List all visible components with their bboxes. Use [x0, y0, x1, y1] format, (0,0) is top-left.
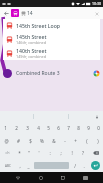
button[interactable]: Backspace [88, 147, 103, 159]
staticText: 145th Street Loop [16, 22, 61, 29]
staticText: " [28, 150, 30, 156]
button[interactable]: & [48, 134, 59, 147]
button[interactable]: Combined Route 3 [0, 66, 103, 80]
staticText: 2 [15, 125, 18, 131]
button[interactable]: 4 [33, 122, 43, 134]
button[interactable]: . [79, 159, 88, 172]
staticText: ) [97, 138, 99, 144]
button[interactable]: / [70, 159, 79, 172]
button[interactable]: 3 [22, 122, 33, 134]
button[interactable]: 1 [0, 122, 11, 134]
staticText: 6 [57, 125, 60, 131]
staticText: 10:30 [92, 1, 101, 6]
staticText: 9 [87, 125, 90, 131]
button[interactable]: Open in Maps [93, 70, 100, 77]
staticText: ; [60, 150, 62, 156]
button[interactable]: Home [35, 172, 46, 183]
staticText: 146th; combined [16, 40, 47, 45]
staticText: 8 [77, 125, 80, 131]
button[interactable]: =\< [0, 147, 14, 159]
staticText: 1 [4, 125, 7, 131]
button[interactable]: 145th Street [3, 32, 100, 46]
staticText: 140th Street [16, 47, 47, 54]
staticText: % [40, 138, 44, 144]
staticText: _ [27, 163, 30, 169]
button[interactable]: + [70, 134, 81, 147]
button[interactable]: " [24, 147, 34, 159]
button[interactable] [69, 111, 103, 122]
button[interactable]: # [12, 134, 24, 147]
staticText: ' [38, 150, 40, 156]
button[interactable]: ' [34, 147, 44, 159]
button[interactable]: : [44, 147, 55, 159]
button[interactable]: Route icon [11, 9, 19, 17]
staticText: / [74, 163, 76, 169]
button[interactable]: 6 [53, 122, 63, 134]
staticText: Combined Route 3 [16, 70, 60, 77]
staticText: ( [86, 138, 88, 144]
staticText: 7 [67, 125, 70, 131]
staticText: 149th; combined [16, 54, 47, 59]
staticText: # [17, 138, 20, 144]
staticText: + [74, 138, 77, 144]
staticText: , [19, 163, 21, 169]
staticText: =\< [5, 151, 10, 155]
button[interactable]: % [36, 134, 48, 147]
staticText: 145th Street [16, 33, 47, 40]
staticText: - [64, 138, 66, 144]
button[interactable]: 5 [43, 122, 53, 134]
button[interactable]: Back [12, 172, 23, 183]
staticText: @ [4, 138, 9, 144]
button[interactable]: 2 [11, 122, 22, 134]
button[interactable]: ) [92, 134, 103, 147]
button[interactable]: 0 [93, 122, 103, 134]
button[interactable]: ; [55, 147, 66, 159]
button[interactable]: - [59, 134, 70, 147]
button[interactable]: , [15, 159, 24, 172]
staticText: $ [29, 138, 32, 144]
button[interactable]: Recents [57, 172, 68, 183]
button[interactable]: ( [81, 134, 92, 147]
staticText: 3 [26, 125, 29, 131]
staticText: 4 [37, 125, 40, 131]
staticText: & [52, 138, 56, 144]
button[interactable]: 7 [63, 122, 73, 134]
button[interactable]: _ [24, 159, 33, 172]
staticText: . [83, 163, 85, 169]
staticText: * [18, 150, 21, 156]
staticText: 5 [47, 125, 50, 131]
button[interactable]: 9 [83, 122, 93, 134]
button[interactable]: ABC [0, 159, 15, 172]
button[interactable]: Keyboard [80, 172, 91, 183]
button[interactable]: ! [66, 147, 77, 159]
button[interactable]: @ [0, 134, 12, 147]
button[interactable]: 145th Street Loop [3, 19, 100, 32]
staticText: : [49, 150, 51, 156]
button[interactable]: ? [77, 147, 88, 159]
staticText: ? [82, 150, 84, 156]
button[interactable]: Back [2, 9, 11, 18]
button[interactable]: 8 [73, 122, 83, 134]
button[interactable]: * [14, 147, 24, 159]
staticText: 14 [27, 10, 33, 17]
button[interactable]: Clear [92, 9, 101, 18]
button[interactable]: 140th Street [3, 46, 100, 60]
button[interactable]: More suggestions [94, 114, 100, 120]
staticText: ! [71, 150, 73, 156]
button[interactable]: Enter [88, 159, 103, 172]
staticText: 0 [97, 125, 100, 131]
staticText: ABC [5, 164, 11, 168]
button[interactable]: $ [24, 134, 36, 147]
